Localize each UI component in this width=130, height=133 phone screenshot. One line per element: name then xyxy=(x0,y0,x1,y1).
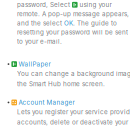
staticText: and the select xyxy=(17,19,64,27)
button[interactable]: WallPaper xyxy=(0,60,51,68)
staticText: resetting your password will be sent xyxy=(17,28,128,36)
staticText: remote. A pop-up message appears, xyxy=(17,10,129,18)
staticText: Lets you register your service provider xyxy=(17,108,130,116)
staticText: using your xyxy=(78,1,112,9)
staticText: accounts, delete or deactivate your xyxy=(17,118,128,126)
staticText: to your e-mail. xyxy=(17,38,62,45)
staticText: . The guide to xyxy=(73,19,117,27)
button[interactable]: Account Manager xyxy=(0,99,75,106)
staticText: WallPaper xyxy=(19,60,51,68)
staticText: password, Select xyxy=(17,1,72,9)
staticText: OK xyxy=(64,19,73,27)
staticText: the Smart Hub home screen. xyxy=(17,80,105,88)
staticText: You can change a background image xyxy=(17,70,130,77)
staticText: Account Manager xyxy=(19,99,75,106)
